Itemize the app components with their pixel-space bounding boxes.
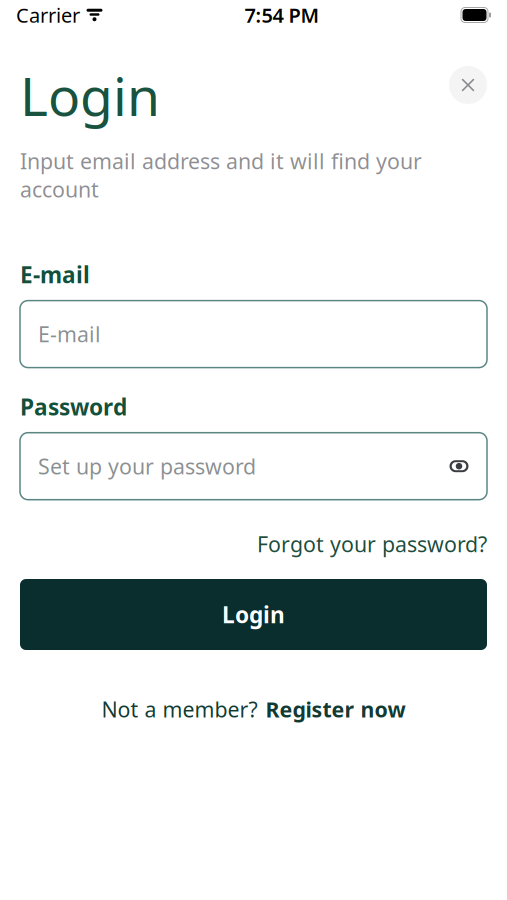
staticText: Not a member?: [101, 695, 257, 723]
staticText: Carrier: [16, 2, 80, 28]
staticText: Set up your password: [38, 452, 256, 480]
button[interactable]: E-mail: [20, 301, 487, 368]
staticText: Input email address and it will find you…: [20, 147, 422, 203]
button[interactable]: Register now: [265, 695, 405, 723]
staticText: Login: [222, 599, 285, 630]
staticText: Register now: [265, 695, 405, 723]
staticText: E-mail: [20, 259, 90, 290]
button[interactable]: Set up your password: [20, 433, 487, 500]
staticText: Login: [20, 60, 160, 131]
button[interactable]: Login: [20, 579, 487, 650]
staticText: Forgot your password?: [257, 530, 487, 558]
button[interactable]: Close: [449, 66, 487, 104]
button[interactable]: Forgot your password?: [257, 530, 487, 558]
staticText: Password: [20, 392, 127, 422]
staticText: 7:54 PM: [244, 2, 319, 28]
staticText: E-mail: [38, 320, 101, 348]
